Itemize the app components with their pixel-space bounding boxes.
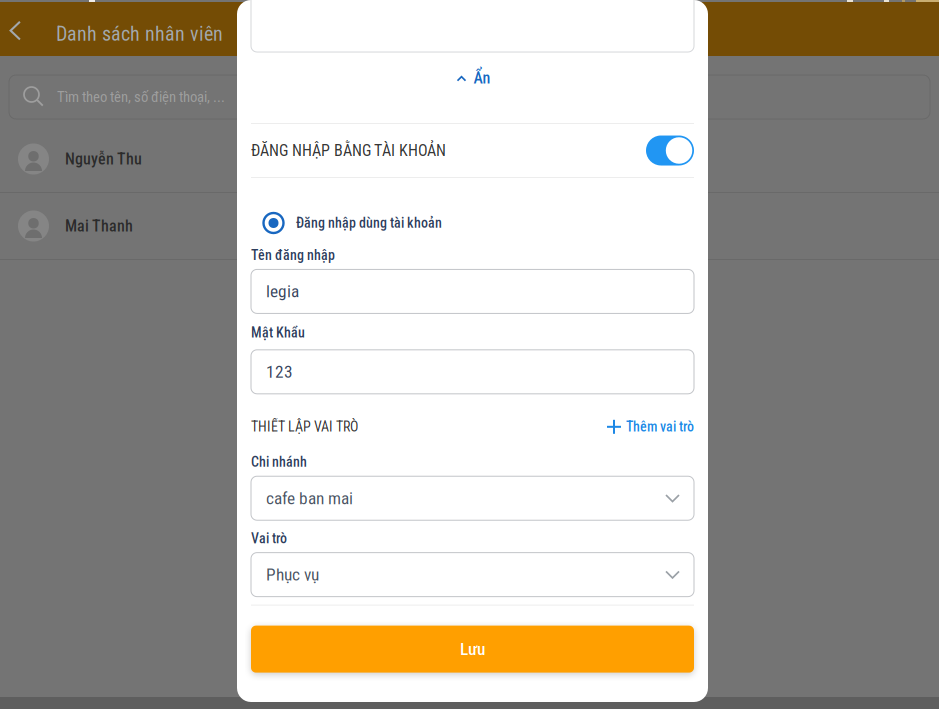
button[interactable]: Ẩn bbox=[442, 64, 502, 92]
staticText: Phục vụ bbox=[266, 564, 319, 585]
staticText: Danh sách nhân viên bbox=[56, 22, 223, 46]
button[interactable]: Mai Thanh bbox=[0, 193, 939, 259]
button[interactable]: Phục vụ bbox=[251, 553, 694, 597]
staticText: Mai Thanh bbox=[65, 217, 133, 235]
staticText: Ẩn bbox=[473, 69, 490, 87]
button[interactable]: Đăng nhập dùng tài khoản bbox=[237, 208, 708, 238]
staticText: Mật Khẩu bbox=[251, 324, 305, 341]
staticText: Vai trò bbox=[251, 530, 287, 547]
button[interactable]: Nguyễn Thu bbox=[0, 126, 939, 192]
staticText: Tên đăng nhập bbox=[251, 247, 335, 263]
button[interactable]: Lưu bbox=[251, 626, 694, 673]
staticText: THIẾT LẬP VAI TRÒ bbox=[251, 419, 358, 435]
staticText: Đăng nhập dùng tài khoản bbox=[296, 215, 442, 231]
staticText: ĐĂNG NHẬP BẰNG TÀI KHOẢN bbox=[251, 141, 446, 160]
button[interactable]: Quay lại bbox=[0, 8, 49, 59]
button[interactable]: cafe ban mai bbox=[251, 476, 694, 520]
staticText: Tìm theo tên, số điện thoại, ... bbox=[57, 88, 225, 106]
staticText: Nguyễn Thu bbox=[65, 150, 142, 168]
staticText: legia bbox=[266, 281, 299, 302]
staticText: 123 bbox=[266, 362, 293, 382]
button[interactable]: Thêm vai trò bbox=[607, 416, 694, 438]
staticText: Lưu bbox=[460, 639, 485, 659]
button[interactable]: Đăng nhập bằng tài khoản bbox=[646, 135, 694, 165]
staticText: cafe ban mai bbox=[266, 488, 353, 508]
staticText: Chi nhánh bbox=[251, 454, 307, 470]
staticText: Thêm vai trò bbox=[626, 419, 694, 435]
